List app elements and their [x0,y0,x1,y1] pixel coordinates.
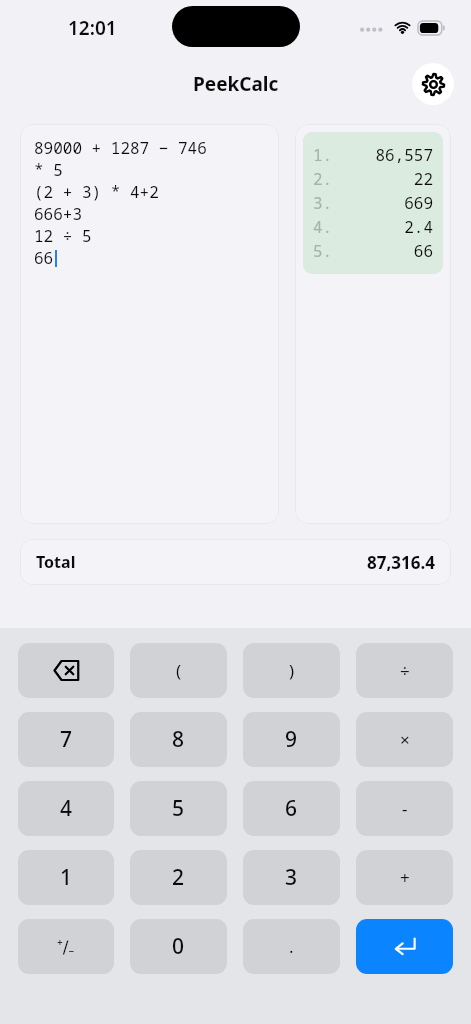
staticText: 66 [34,247,54,269]
button[interactable]: 7 [18,712,114,767]
staticText: 4 [60,794,73,823]
staticText: - [402,797,408,820]
button[interactable]: 5 [130,781,227,836]
button[interactable]: 6 [243,781,340,836]
button[interactable]: 8 [130,712,227,767]
staticText: . [289,935,294,958]
staticText: 669 [333,192,433,214]
button[interactable]: 4 [18,781,114,836]
staticText: 4. [313,216,333,238]
staticText: 6 [285,794,298,823]
button[interactable]: 0 [130,919,227,974]
staticText: 0 [172,932,185,961]
button[interactable]: 2 [130,850,227,905]
staticText: 2.4 [333,216,433,238]
staticText: ( [176,659,182,682]
staticText: ÷ [400,659,410,682]
staticText: Total [36,551,76,573]
button[interactable]: 3 [243,850,340,905]
button[interactable]: Backspace [18,643,114,698]
button[interactable]: Total [20,539,451,585]
staticText: 3 [285,863,298,892]
staticText: 86,557 [333,144,433,166]
staticText: PeekCalc [193,71,279,97]
button[interactable]: ( [130,643,227,698]
button[interactable]: 9 [243,712,340,767]
button[interactable]: + [356,850,453,905]
button[interactable]: Settings [412,63,454,105]
staticText: 1. [313,144,333,166]
staticText: 8 [172,725,185,754]
staticText: 66 [333,240,433,262]
staticText: 1 [60,863,73,892]
staticText: 9 [285,725,298,754]
staticText: 7 [60,725,73,754]
button[interactable]: 1. [295,124,451,524]
button[interactable]: 89000 + 1287 − 746 [20,124,279,524]
button[interactable]: - [356,781,453,836]
staticText: 5. [313,240,333,262]
button[interactable]: 1 [18,850,114,905]
staticText: 5 [172,794,185,823]
staticText: * 5 [34,159,63,181]
staticText: 3. [313,192,333,214]
staticText: 12 ÷ 5 [34,225,92,247]
staticText: × [400,728,410,751]
staticText: 2. [313,168,333,190]
staticText: 22 [333,168,433,190]
button[interactable]: ÷ [356,643,453,698]
staticText: 89000 + 1287 − 746 [34,137,207,159]
staticText: 12:01 [68,15,117,41]
staticText: + [400,866,410,889]
staticText: (2 + 3) * 4+2 [34,181,159,203]
staticText: 2 [172,863,185,892]
staticText: 666+3 [34,203,83,225]
button[interactable]: Enter [356,919,453,974]
button[interactable]: ) [243,643,340,698]
button[interactable]: ⁺∕₋ [18,919,114,974]
staticText: ) [289,659,295,682]
staticText: ⁺∕₋ [57,935,75,958]
button[interactable]: × [356,712,453,767]
staticText: 87,316.4 [367,551,435,574]
button[interactable]: . [243,919,340,974]
